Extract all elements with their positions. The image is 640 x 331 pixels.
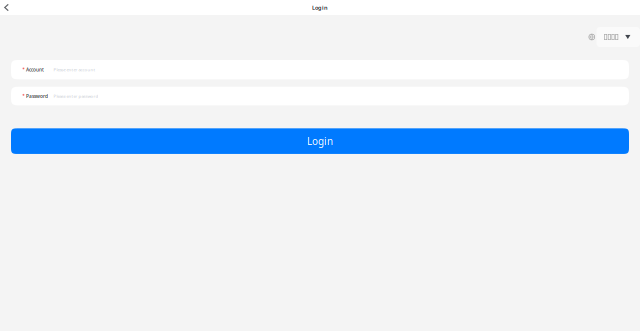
staticText: Account <box>26 66 44 73</box>
staticText: Login <box>307 134 333 148</box>
staticText: Password <box>26 93 48 99</box>
staticText: Login <box>312 4 328 11</box>
staticText: Please enter password <box>53 93 98 99</box>
button[interactable]: Login <box>11 128 629 154</box>
button[interactable]: Back <box>0 0 13 15</box>
staticText: Please enter account <box>53 67 95 72</box>
button[interactable]: Select language <box>588 27 640 47</box>
